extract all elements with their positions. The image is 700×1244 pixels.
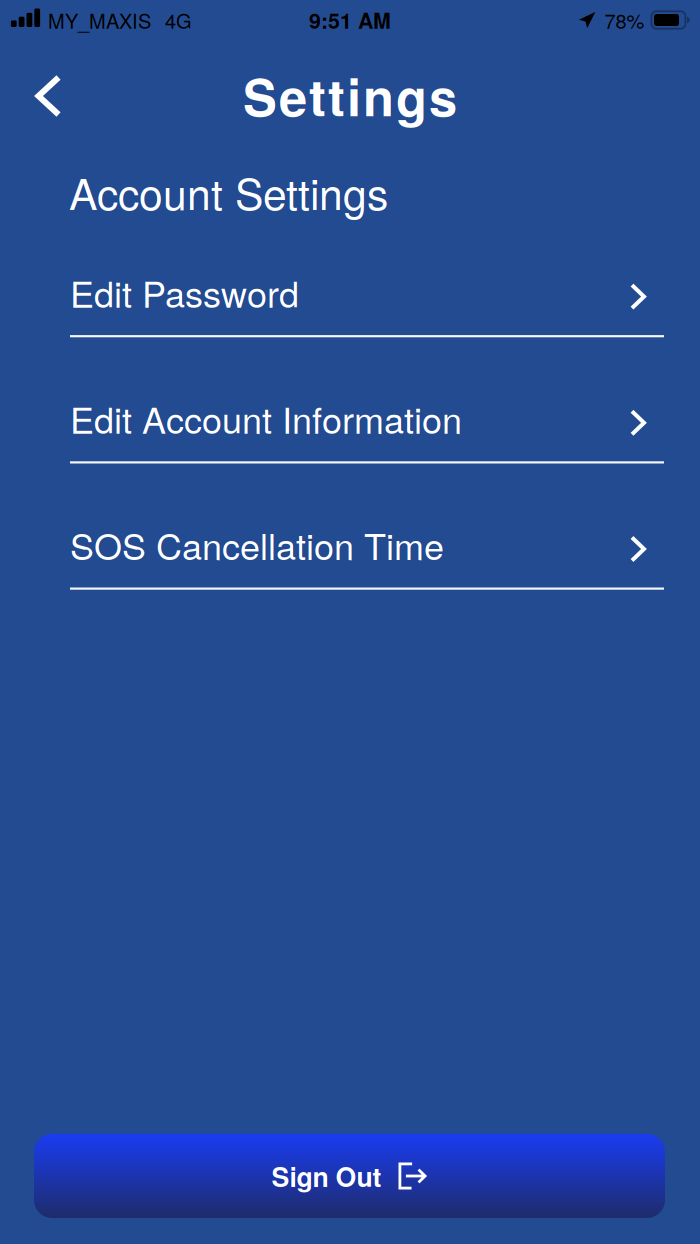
staticText: 9:51 AM	[309, 5, 391, 35]
staticText: Edit Account Information	[70, 392, 462, 444]
staticText: 78%	[604, 6, 644, 34]
staticText: Edit Password	[70, 266, 299, 318]
staticText: Account Settings	[69, 161, 388, 222]
staticText: 4G	[165, 6, 192, 34]
button[interactable]: SOS Cancellation Time	[0, 524, 700, 590]
button[interactable]: Sign Out	[0, 1134, 700, 1218]
staticText: Settings	[243, 59, 457, 132]
staticText: MY_MAXIS	[48, 6, 151, 34]
button[interactable]: Back	[0, 48, 81, 111]
button[interactable]: Edit Account Information	[0, 398, 700, 463]
staticText: Sign Out	[271, 1157, 381, 1195]
button[interactable]: Edit Password	[0, 272, 700, 337]
staticText: SOS Cancellation Time	[70, 519, 444, 570]
